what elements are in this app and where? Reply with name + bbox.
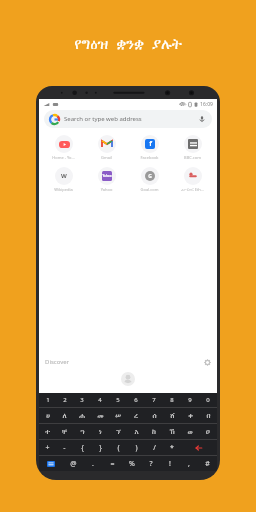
button[interactable]: ኸ [163, 424, 181, 439]
button[interactable]: ኘ [109, 424, 127, 439]
staticText: 2 [63, 396, 67, 404]
button[interactable]: { [73, 440, 91, 455]
button[interactable]: * [163, 440, 181, 455]
staticText: አ [134, 428, 139, 435]
staticText: ተ [45, 428, 50, 435]
staticText: Search or type web address [64, 115, 198, 123]
staticText: መ [97, 412, 104, 419]
button[interactable]: f [128, 133, 171, 162]
button[interactable]: ረ [127, 408, 145, 423]
button[interactable]: 5 [109, 393, 127, 407]
staticText: f [149, 139, 152, 149]
staticText: 1 [46, 396, 50, 404]
staticText: ሀ [46, 412, 50, 419]
button[interactable]: BBC.com [171, 133, 214, 162]
button[interactable]: ! [160, 456, 179, 471]
staticText: . [92, 459, 94, 469]
staticText: ነ [99, 428, 102, 435]
button[interactable]: ኀ [73, 424, 91, 439]
staticText: በ [206, 412, 211, 419]
button[interactable]: 9 [181, 393, 199, 407]
staticText: 9 [188, 396, 192, 404]
button[interactable]: በ [199, 408, 217, 423]
staticText: 3 [80, 396, 84, 404]
button[interactable]: 0 [199, 393, 217, 407]
button[interactable]: ሸ [163, 408, 181, 423]
button[interactable]: Home - Yo… [42, 133, 85, 162]
staticText: Wikipedia [42, 187, 85, 192]
staticText: ! [169, 459, 171, 469]
button[interactable]: - [56, 440, 73, 455]
staticText: 6 [134, 396, 138, 404]
staticText: # [205, 459, 210, 469]
button[interactable]: ) [127, 440, 145, 455]
staticText: Gmail [85, 155, 128, 160]
button[interactable]: ሀ [39, 408, 56, 423]
button[interactable]: ሰ [145, 408, 163, 423]
staticText: 8 [170, 396, 174, 404]
button[interactable]: , [179, 456, 198, 471]
button[interactable]: ቸ [56, 424, 73, 439]
button[interactable]: ሐ [73, 408, 91, 423]
button[interactable]: ( [109, 440, 127, 455]
button[interactable] [44, 369, 212, 393]
button[interactable]: ነ [91, 424, 109, 439]
button[interactable]: 2 [56, 393, 73, 407]
button[interactable]: Search or type web address [44, 110, 212, 128]
button[interactable]: መ [91, 408, 109, 423]
button[interactable]: G [128, 165, 171, 194]
staticText: ኀ [80, 428, 85, 435]
staticText: - [63, 443, 66, 453]
button[interactable]: 3 [73, 393, 91, 407]
button[interactable]: ዐ [199, 424, 217, 439]
button[interactable]: ሪፖርተር Eth… [171, 165, 214, 194]
button[interactable]: Yahoo [85, 165, 128, 194]
button[interactable]: አ [127, 424, 145, 439]
button[interactable]: / [145, 440, 163, 455]
button[interactable]: 4 [91, 393, 109, 407]
button[interactable]: ተ [39, 424, 56, 439]
staticText: + [45, 443, 50, 453]
button[interactable]: % [122, 456, 141, 471]
button[interactable]: 6 [127, 393, 145, 407]
staticText: Home - Yo… [42, 155, 85, 160]
staticText: ለ [62, 412, 67, 419]
staticText: 5 [116, 396, 120, 404]
other: Voice search [198, 115, 206, 123]
button[interactable]: ሠ [109, 408, 127, 423]
staticText: 16:09 [200, 101, 213, 108]
staticText: } [99, 443, 102, 453]
button[interactable]: . [83, 456, 103, 471]
button[interactable]: Discover settings [204, 359, 211, 366]
button[interactable]: Backspace [181, 440, 217, 455]
button[interactable]: + [39, 440, 56, 455]
staticText: * [170, 443, 174, 453]
staticText: ሰ [152, 412, 157, 419]
button[interactable]: W [42, 165, 85, 194]
staticText: / [153, 443, 156, 453]
button[interactable]: ቀ [181, 408, 199, 423]
button[interactable]: Switch keyboard [39, 456, 63, 471]
staticText: BBC.com [171, 155, 214, 160]
button[interactable]: Gmail [85, 133, 128, 162]
button[interactable]: 8 [163, 393, 181, 407]
button[interactable]: ወ [181, 424, 199, 439]
staticText: የግዕዝ ቋንቋ ያሉት [74, 33, 182, 53]
button[interactable]: 7 [145, 393, 163, 407]
button[interactable]: 1 [39, 393, 56, 407]
button[interactable]: = [103, 456, 122, 471]
button[interactable]: # [198, 456, 217, 471]
button[interactable]: } [91, 440, 109, 455]
button[interactable]: ለ [56, 408, 73, 423]
button[interactable]: @ [63, 456, 83, 471]
staticText: ኸ [169, 428, 175, 435]
staticText: ሸ [170, 412, 175, 419]
button[interactable]: ከ [145, 424, 163, 439]
staticText: 4 [98, 396, 102, 404]
staticText: ዐ [206, 428, 210, 435]
staticText: ረ [134, 412, 138, 419]
staticText: ወ [187, 428, 193, 435]
staticText: { [81, 443, 84, 453]
staticText: , [188, 459, 190, 469]
button[interactable]: ? [141, 456, 160, 471]
